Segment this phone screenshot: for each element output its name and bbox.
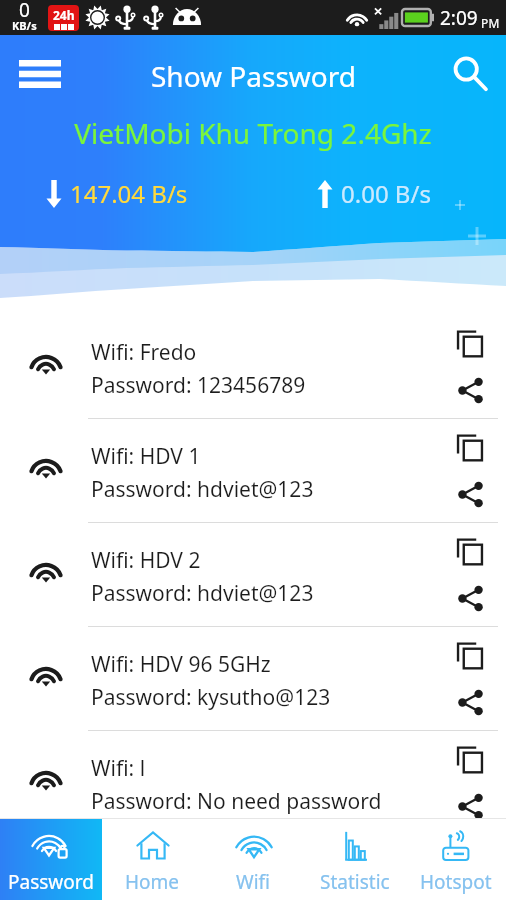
staticText: KB/s <box>12 18 37 33</box>
button[interactable]: Copy password <box>446 635 494 677</box>
button[interactable]: Wifi <box>203 819 304 900</box>
button[interactable]: Share password <box>446 681 494 723</box>
staticText: Wifi: l <box>91 754 146 783</box>
button[interactable]: Wifi: HDV 96 5GHz <box>0 627 506 730</box>
staticText: Wifi: HDV 96 5GHz <box>91 650 271 679</box>
staticText: Password: kysutho@123 <box>91 683 331 712</box>
staticText: Password: hdviet@123 <box>91 475 314 504</box>
staticText: Wifi: HDV 2 <box>91 546 201 575</box>
button[interactable]: Wifi: HDV 2 <box>0 523 506 626</box>
staticText: Password: 123456789 <box>91 371 306 400</box>
button[interactable]: Copy password <box>446 323 494 365</box>
staticText: 0.00 B/s <box>341 177 431 210</box>
staticText: Home <box>125 869 180 895</box>
staticText: Password <box>8 869 94 895</box>
staticText: 24h <box>53 7 75 23</box>
staticText: 2:09 <box>440 5 478 31</box>
button[interactable]: Hotspot <box>405 819 506 900</box>
button[interactable]: Share password <box>446 473 494 515</box>
staticText: VietMobi Khu Trong 2.4Ghz <box>0 114 506 152</box>
staticText: 0 <box>19 0 30 23</box>
staticText: Hotspot <box>420 869 492 895</box>
button[interactable]: Copy password <box>446 531 494 573</box>
staticText: Show Password <box>151 57 356 95</box>
button[interactable]: Share password <box>446 785 494 827</box>
staticText: Password: No need password <box>91 787 382 816</box>
staticText: Wifi <box>236 869 271 895</box>
button[interactable]: Search <box>440 42 500 102</box>
staticText: Wifi: HDV 1 <box>91 442 201 471</box>
button[interactable]: Open navigation menu <box>8 41 72 103</box>
button[interactable]: Copy password <box>446 427 494 469</box>
button[interactable]: Wifi: Fredo <box>0 315 506 418</box>
button[interactable]: Home <box>102 819 203 900</box>
button[interactable]: Statistic <box>304 819 405 900</box>
staticText: Statistic <box>320 869 390 895</box>
staticText: Password: hdviet@123 <box>91 579 314 608</box>
staticText: Wifi: Fredo <box>91 338 197 367</box>
button[interactable]: Share password <box>446 369 494 411</box>
staticText: PM <box>478 15 500 31</box>
button[interactable]: Copy password <box>446 739 494 781</box>
button[interactable]: Wifi: HDV 1 <box>0 419 506 522</box>
staticText: 147.04 B/s <box>70 177 188 210</box>
button[interactable]: Share password <box>446 577 494 619</box>
button[interactable]: Wifi: l <box>0 731 506 834</box>
button[interactable]: Password <box>0 819 102 900</box>
